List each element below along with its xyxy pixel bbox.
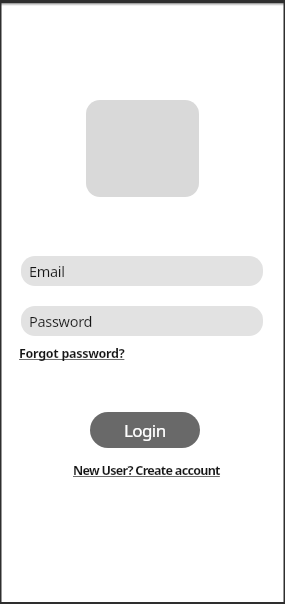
staticText: Forgot password? bbox=[19, 345, 125, 362]
staticText: New User? Create account bbox=[73, 462, 220, 479]
button[interactable]: Password bbox=[21, 306, 263, 336]
staticText: Email bbox=[29, 261, 65, 281]
staticText: Login bbox=[124, 419, 166, 442]
staticText: Password bbox=[29, 311, 93, 331]
button[interactable]: Email bbox=[21, 256, 263, 286]
button[interactable]: New User? Create account bbox=[73, 462, 220, 479]
button[interactable]: Forgot password? bbox=[19, 345, 125, 362]
button[interactable]: Login bbox=[90, 412, 200, 448]
